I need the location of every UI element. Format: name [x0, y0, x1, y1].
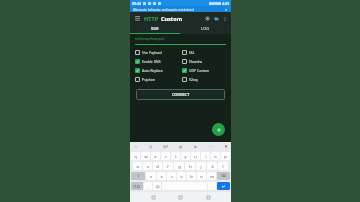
button[interactable]: Psiphon: [135, 75, 179, 84]
staticText: ⋯: [209, 144, 213, 149]
staticText: m: [210, 174, 214, 179]
button[interactable]: SSL: [182, 48, 226, 57]
staticText: i: [205, 154, 207, 159]
staticText: o: [214, 154, 217, 159]
button[interactable]: Shift: [131, 172, 145, 180]
staticText: j: [200, 164, 202, 169]
button[interactable]: Slowdns: [182, 57, 226, 66]
staticText: UDP Custom: [189, 68, 210, 73]
staticText: x: [160, 174, 163, 179]
button[interactable]: f: [163, 162, 173, 170]
staticText: n: [200, 174, 203, 179]
button[interactable]: Recents: [204, 193, 213, 202]
staticText: ▤: [179, 145, 183, 149]
button[interactable]: p: [221, 152, 230, 160]
staticText: Use Payload: [142, 50, 162, 55]
button[interactable]: d: [153, 162, 162, 170]
staticText: r: [165, 154, 167, 159]
button[interactable]: s: [143, 162, 152, 170]
button[interactable]: SSH: [130, 24, 180, 33]
staticText: Enable DNS: [142, 59, 161, 64]
button[interactable]: ,: [144, 182, 152, 190]
button[interactable]: a: [133, 162, 142, 170]
button[interactable]: o: [211, 152, 220, 160]
button[interactable]: Menu: [133, 14, 142, 23]
staticText: Alternate behavior and wants minimized: [133, 8, 194, 12]
button[interactable]: Tool ✿: [192, 143, 199, 150]
button[interactable]: Backspace: [217, 172, 230, 180]
button[interactable]: k: [207, 162, 217, 170]
button[interactable]: LOG: [180, 24, 231, 33]
button[interactable]: e: [151, 152, 160, 160]
staticText: Custom: [161, 15, 183, 22]
button[interactable]: Auto Replace: [135, 66, 179, 75]
staticText: a: [136, 164, 139, 169]
button[interactable]: Home: [176, 193, 185, 202]
button[interactable]: More tools: [207, 143, 214, 150]
button[interactable]: l: [218, 162, 228, 170]
staticText: SSH: [151, 26, 159, 31]
staticText: Auto Replace: [142, 68, 163, 73]
staticText: d: [156, 164, 159, 169]
staticText: ssh/proxy/host:port: [135, 37, 165, 41]
button[interactable]: Cloud: [212, 14, 221, 23]
staticText: CONNECT: [172, 92, 190, 97]
button[interactable]: n: [197, 172, 206, 180]
button[interactable]: V2ray: [182, 75, 226, 84]
button[interactable]: Voice input: [222, 143, 229, 150]
button[interactable]: More options: [221, 15, 228, 22]
button[interactable]: q: [131, 152, 140, 160]
button[interactable]: r: [161, 152, 170, 160]
button[interactable]: z: [146, 172, 156, 180]
staticText: w: [144, 154, 148, 159]
staticText: b: [190, 174, 193, 179]
button[interactable]: h: [185, 162, 195, 170]
staticText: LOG: [201, 26, 210, 31]
button[interactable]: w: [141, 152, 150, 160]
staticText: ☺: [155, 184, 160, 189]
staticText: f: [167, 164, 169, 169]
button[interactable]: j: [196, 162, 206, 170]
staticText: GIF: [163, 145, 169, 149]
staticText: p: [224, 154, 227, 159]
button[interactable]: u: [191, 152, 200, 160]
button[interactable]: UDP Custom: [182, 66, 226, 75]
staticText: g: [178, 164, 181, 169]
button[interactable]: v: [177, 172, 186, 180]
staticText: ☺: [149, 145, 153, 149]
staticText: ✿: [194, 145, 197, 149]
staticText: v: [180, 174, 183, 179]
staticText: 09:44: [132, 1, 141, 6]
button[interactable]: m: [207, 172, 216, 180]
button[interactable]: Tool ▤: [177, 143, 184, 150]
staticText: u: [194, 154, 197, 159]
button[interactable]: b: [187, 172, 196, 180]
button[interactable]: CONNECT: [136, 89, 225, 100]
button[interactable]: g: [174, 162, 184, 170]
button[interactable]: Settings: [203, 14, 212, 23]
button[interactable]: Enable DNS: [135, 57, 179, 66]
button[interactable]: t: [171, 152, 180, 160]
button[interactable]: c: [167, 172, 176, 180]
button[interactable]: Symbols: [131, 182, 143, 190]
staticText: ⇧: [137, 174, 140, 178]
button[interactable]: Enter: [217, 182, 230, 190]
button[interactable]: Add: [212, 123, 225, 136]
staticText: <: [135, 145, 137, 149]
button[interactable]: x: [157, 172, 166, 180]
staticText: z: [150, 174, 152, 179]
button[interactable]: Back: [149, 193, 158, 202]
button[interactable]: Tool GIF: [162, 143, 169, 150]
staticText: s: [147, 164, 149, 169]
button[interactable]: Tool ☺: [147, 143, 154, 150]
staticText: Slowdns: [189, 59, 203, 64]
staticText: l: [222, 164, 224, 169]
button[interactable]: ☺: [153, 182, 161, 190]
button[interactable]: i: [201, 152, 210, 160]
button[interactable]: y: [181, 152, 190, 160]
button[interactable]: Use Payload: [135, 48, 179, 57]
staticText: k: [211, 164, 214, 169]
button[interactable]: Tool <: [132, 143, 139, 150]
